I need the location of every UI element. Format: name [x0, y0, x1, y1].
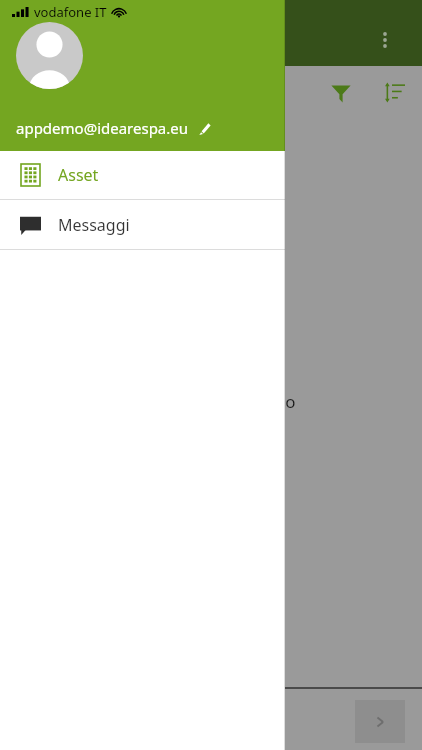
button[interactable]: Filter — [323, 75, 359, 111]
staticText: Asset — [58, 164, 99, 186]
button[interactable]: Sort — [376, 74, 412, 110]
staticText: to — [279, 390, 296, 413]
button[interactable]: Next — [355, 700, 405, 743]
button[interactable]: Profile picture — [16, 22, 83, 89]
staticText: appdemo@idearespa.eu — [16, 118, 189, 138]
button[interactable]: Edit email — [196, 120, 212, 136]
staticText: Messaggi — [58, 214, 130, 236]
button[interactable]: Asset — [0, 151, 285, 199]
staticText: vodafone IT — [34, 3, 107, 21]
button[interactable]: Messaggi — [0, 200, 285, 249]
button[interactable]: More options — [371, 26, 399, 54]
